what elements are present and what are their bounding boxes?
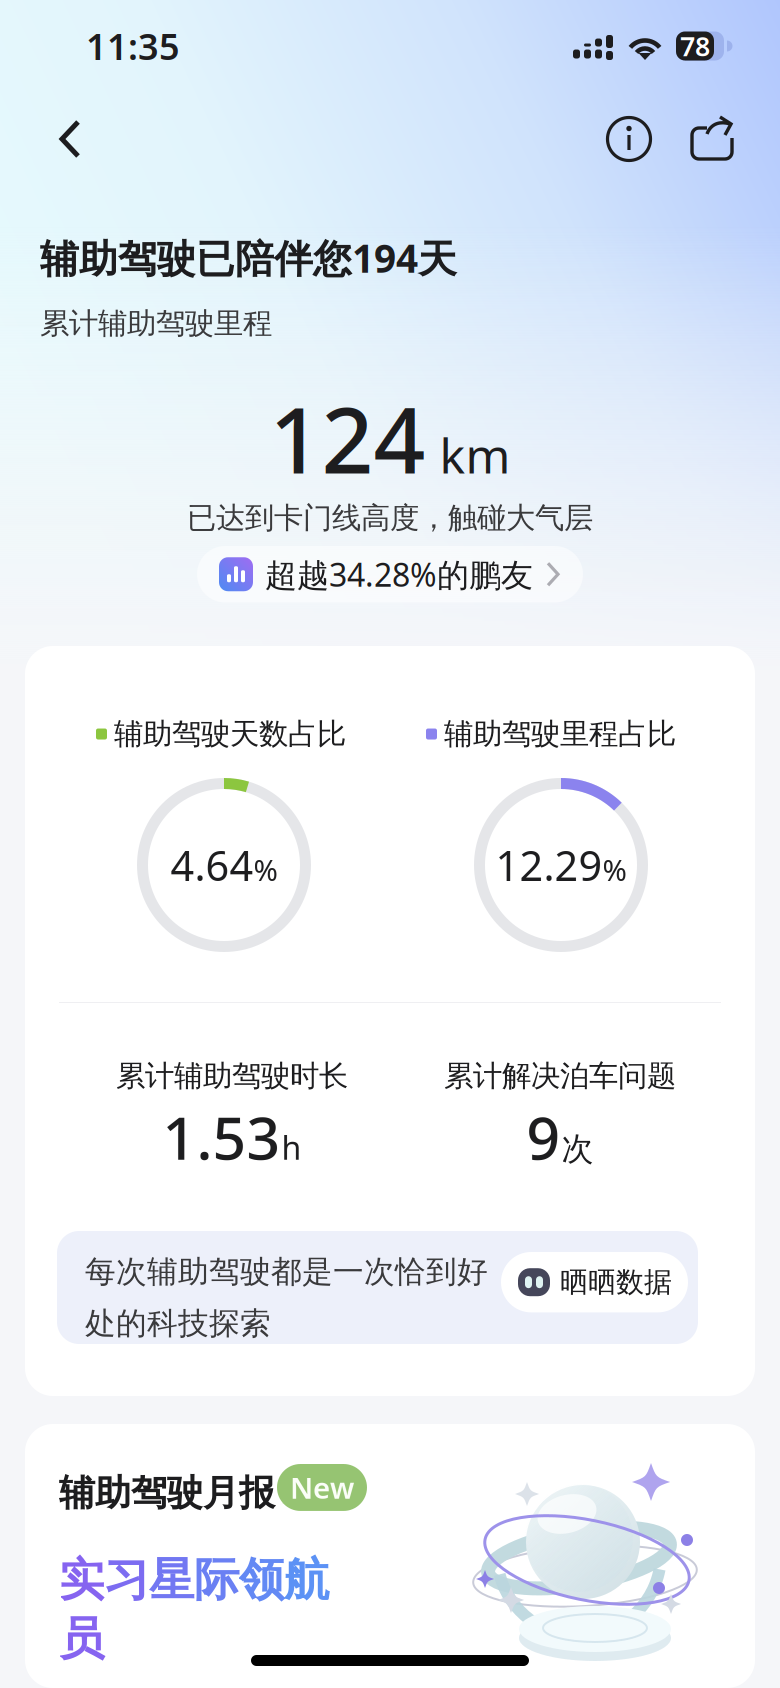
staticText: 124 xyxy=(269,378,425,498)
staticText: 辅助驾驶月报 xyxy=(59,1471,275,1515)
staticText: 次 xyxy=(561,1129,593,1169)
staticText: 11:35 xyxy=(86,22,180,70)
button[interactable]: Back xyxy=(36,104,106,174)
staticText: 习 xyxy=(104,1552,149,1608)
staticText: % xyxy=(253,850,277,889)
staticText: 辅助驾驶天数占比 xyxy=(114,716,346,752)
staticText: 1.53 xyxy=(162,1098,280,1176)
staticText: 已达到卡门线高度，触碰大气层 xyxy=(187,500,593,536)
staticText: km xyxy=(439,423,510,487)
staticText: 累计解决泊车问题 xyxy=(444,1058,676,1094)
button[interactable]: 晒晒数据 xyxy=(501,1252,688,1312)
staticText: 星 xyxy=(149,1552,194,1608)
staticText: 9 xyxy=(526,1098,560,1176)
staticText: 累计辅助驾驶时长 xyxy=(116,1058,348,1094)
staticText: 实 xyxy=(59,1552,104,1608)
staticText: New xyxy=(290,1468,354,1507)
staticText: 员 xyxy=(59,1611,104,1667)
staticText: 78 xyxy=(680,28,710,64)
staticText: h xyxy=(281,1126,301,1169)
staticText: 4.64 xyxy=(170,838,253,892)
button[interactable]: Info xyxy=(594,104,664,174)
staticText: 处的科技探索 xyxy=(85,1305,271,1342)
staticText: 际 xyxy=(194,1552,239,1608)
staticText: 辅助驾驶里程占比 xyxy=(444,716,676,752)
button[interactable]: 超越34.28%的鹏友 xyxy=(197,546,583,602)
staticText: 领 xyxy=(239,1552,284,1608)
staticText: 辅助驾驶已陪伴您194天 xyxy=(40,232,457,283)
staticText: 12.29 xyxy=(495,838,602,892)
button[interactable]: Share xyxy=(678,104,748,174)
staticText: 每次辅助驾驶都是一次恰到好 xyxy=(85,1253,488,1291)
staticText: 航 xyxy=(284,1552,329,1608)
staticText: % xyxy=(602,850,626,889)
staticText: 超越34.28%的鹏友 xyxy=(265,553,533,595)
staticText: 累计辅助驾驶里程 xyxy=(40,305,272,341)
staticText: 晒晒数据 xyxy=(560,1265,672,1299)
